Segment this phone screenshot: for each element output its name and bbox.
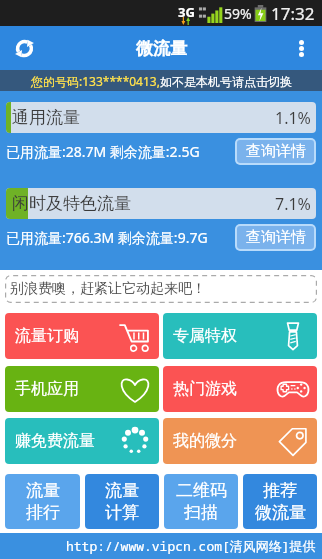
button[interactable]: 流量	[5, 474, 80, 529]
button[interactable]: 热门游戏	[163, 366, 317, 412]
staticText: 流量订购	[15, 326, 79, 346]
staticText: 查询详情	[246, 142, 306, 161]
button[interactable]: 二维码	[164, 474, 238, 529]
staticText: 如不是本机号请点击切换	[160, 74, 292, 89]
staticText: 赚免费流量	[15, 431, 95, 451]
staticText: 二维码	[176, 480, 227, 501]
staticText: 3G	[178, 3, 195, 21]
staticText: 专属特权	[173, 326, 237, 346]
staticText: 流量	[26, 480, 60, 501]
button[interactable]: 查询详情	[235, 138, 316, 165]
staticText: 排行	[26, 502, 60, 523]
staticText: 查询详情	[246, 228, 306, 247]
staticText: 热门游戏	[173, 379, 237, 399]
staticText: 闲时及特色流量	[12, 193, 131, 214]
button[interactable]: More options	[286, 33, 316, 63]
staticText: 我的微分	[173, 431, 237, 451]
button[interactable]: 手机应用	[5, 366, 159, 412]
staticText: 微流量	[136, 38, 187, 59]
staticText: 流量	[105, 480, 139, 501]
button[interactable]: 我的微分	[163, 418, 317, 464]
staticText: 已用流量:28.7M 剩余流量:2.5G	[6, 142, 200, 161]
staticText: 17:32	[271, 2, 315, 25]
button[interactable]: Refresh	[7, 31, 41, 65]
staticText: 通用流量	[12, 107, 80, 128]
staticText: 59%	[224, 4, 252, 23]
button[interactable]: 闲时及特色流量	[6, 188, 316, 219]
button[interactable]: 别浪费噢，赶紧让它动起来吧！	[5, 275, 317, 303]
staticText: http://www.vipcn.com[清风网络]提供	[66, 537, 316, 555]
staticText: 别浪费噢，赶紧让它动起来吧！	[10, 280, 206, 298]
button[interactable]: 流量	[85, 474, 159, 529]
button[interactable]: 查询详情	[235, 224, 316, 251]
button[interactable]: 专属特权	[163, 313, 317, 359]
button[interactable]: 流量订购	[5, 313, 159, 359]
staticText: 扫描	[184, 502, 218, 523]
staticText: 微流量	[255, 502, 306, 523]
staticText: 推荐	[263, 480, 297, 501]
staticText: 7.1%	[275, 193, 311, 215]
staticText: 已用流量:766.3M 剩余流量:9.7G	[6, 228, 208, 247]
button[interactable]: 您的号码:133****0413,	[0, 70, 322, 91]
staticText: 1.1%	[275, 107, 311, 129]
staticText: 手机应用	[15, 379, 79, 399]
button[interactable]: 赚免费流量	[5, 418, 159, 464]
button[interactable]: 通用流量	[6, 102, 316, 133]
button[interactable]: 推荐	[243, 474, 317, 529]
staticText: 您的号码:133****0413,	[31, 73, 160, 89]
staticText: 计算	[105, 502, 139, 523]
